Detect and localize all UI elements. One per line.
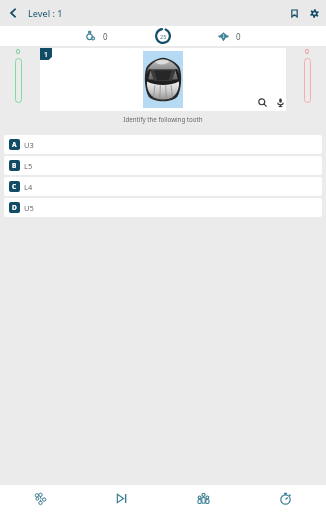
staticText: D xyxy=(12,203,17,212)
staticText: U5 xyxy=(24,203,34,213)
staticText: A xyxy=(12,140,17,149)
button[interactable]: Gems xyxy=(217,30,229,42)
staticText: 0 xyxy=(236,31,241,42)
staticText: 25 xyxy=(160,33,167,40)
staticText: L4 xyxy=(24,182,33,192)
staticText: U3 xyxy=(24,140,34,150)
button[interactable]: Potions xyxy=(84,30,96,42)
button[interactable]: Skip xyxy=(81,485,162,512)
button[interactable]: Shuffle xyxy=(0,485,81,512)
button[interactable]: D xyxy=(4,198,322,217)
button[interactable]: Zoom in xyxy=(254,94,270,110)
staticText: B xyxy=(12,161,17,170)
staticText: Identify the following tooth xyxy=(0,115,326,123)
staticText: L5 xyxy=(24,161,33,171)
staticText: 0 xyxy=(103,31,108,42)
staticText: 0 xyxy=(305,47,310,57)
staticText: 0 xyxy=(16,47,21,57)
button[interactable]: C xyxy=(4,177,322,196)
staticText: C xyxy=(12,182,17,191)
button[interactable]: Leaderboard xyxy=(162,485,244,512)
button[interactable]: Bookmark xyxy=(284,3,304,23)
button[interactable]: Settings xyxy=(304,3,324,23)
button[interactable]: A xyxy=(4,135,322,154)
button[interactable]: Microphone xyxy=(272,94,288,110)
staticText: Level : 1 xyxy=(28,7,63,19)
button[interactable]: B xyxy=(4,156,322,175)
button[interactable]: Back xyxy=(0,0,26,26)
staticText: 1 xyxy=(44,50,49,60)
button[interactable]: Timer xyxy=(244,485,326,512)
